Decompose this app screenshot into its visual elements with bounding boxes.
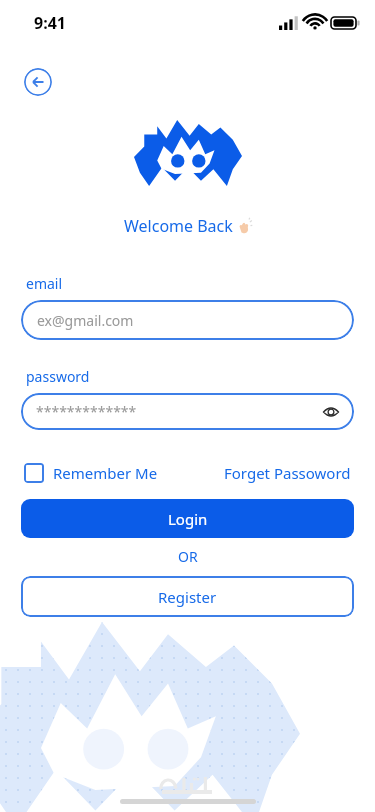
button[interactable]: Login <box>21 499 354 538</box>
button[interactable]: Forget Passoword <box>224 463 351 483</box>
button[interactable]: Show password <box>318 399 344 425</box>
staticText: ************* <box>36 402 137 421</box>
button[interactable]: Back <box>24 68 52 96</box>
staticText: Welcome Back <box>124 215 233 237</box>
staticText: Forget Passoword <box>224 463 351 483</box>
button[interactable]: Register <box>21 576 354 617</box>
button[interactable]: ex@gmail.com <box>21 300 354 340</box>
button[interactable]: ************* <box>21 393 354 430</box>
staticText: ex@gmail.com <box>37 311 134 330</box>
staticText: Register <box>158 587 217 607</box>
button[interactable]: Remember Me <box>24 463 158 483</box>
staticText: 9:41 <box>34 12 66 34</box>
staticText: OR <box>178 547 198 566</box>
staticText: Login <box>168 509 208 529</box>
staticText: Remember Me <box>53 463 158 483</box>
staticText: password <box>26 367 90 386</box>
staticText: email <box>26 274 63 293</box>
